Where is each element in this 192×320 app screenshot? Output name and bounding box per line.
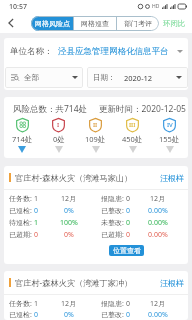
staticText: 已超期:	[9, 230, 32, 240]
staticText: 10:57	[9, 2, 27, 12]
staticText: 泾县应急管理网格化信息平台	[58, 46, 169, 57]
staticText: 2020-12	[124, 73, 176, 83]
staticText: 已整改:	[101, 310, 124, 320]
staticText: 环闭比	[163, 19, 186, 28]
staticText: 已巡检:	[9, 310, 32, 320]
staticText: HD	[152, 3, 160, 10]
staticText: 1	[34, 299, 39, 309]
staticText: 0	[126, 299, 131, 309]
staticText: I	[57, 121, 60, 129]
staticText: 网格风险点	[35, 19, 70, 28]
staticText: 155处	[159, 134, 180, 144]
staticText: 风险总数：共714处	[13, 103, 88, 115]
staticText: 0	[126, 310, 131, 320]
button[interactable]: 网格巡查	[74, 16, 116, 31]
staticText: 100%	[60, 218, 78, 228]
staticText: 450处	[122, 134, 143, 144]
staticText: IV	[167, 121, 173, 129]
staticText: 0.00%	[148, 310, 168, 320]
button[interactable]: IV	[151, 118, 188, 153]
staticText: 日期：	[93, 73, 116, 82]
staticText: 0.00%	[148, 206, 168, 216]
staticText: 0	[126, 230, 131, 240]
staticText: 已巡检:	[9, 206, 32, 216]
staticText: 单位名称：	[10, 46, 53, 57]
staticText: 官庄村-森林火灾（湾滩马家山）	[15, 172, 160, 183]
staticText: 更新时间：2020-12-05	[99, 103, 186, 115]
staticText: 1	[34, 218, 39, 228]
staticText: 待巡检:	[9, 218, 32, 228]
staticText: 0	[126, 218, 131, 228]
staticText: 报隐患:	[101, 299, 124, 309]
staticText: 报隐患:	[101, 194, 124, 204]
staticText: 未整改:	[101, 218, 124, 228]
button[interactable]: III	[114, 118, 151, 153]
button[interactable]: 网格风险点	[31, 16, 73, 31]
staticText: 部门考评	[124, 19, 152, 28]
staticText: 12月	[150, 299, 166, 309]
button[interactable]: II	[77, 118, 114, 153]
button[interactable]: 部门考评	[117, 16, 159, 31]
button[interactable]: I	[40, 118, 77, 153]
button[interactable]: Back	[0, 13, 22, 33]
staticText: 12月	[150, 194, 166, 204]
button[interactable]: 位置查看	[109, 245, 144, 256]
staticText: 0%	[64, 206, 74, 216]
staticText: 0	[126, 194, 131, 204]
staticText: 0%	[64, 310, 74, 320]
staticText: 0	[34, 310, 39, 320]
button[interactable]: 714处	[4, 118, 40, 153]
staticText: 汪根样	[160, 278, 184, 288]
button[interactable]: 日期：	[87, 67, 188, 88]
staticText: 全部	[24, 73, 72, 82]
button[interactable]: 单位名称：	[4, 46, 188, 57]
button[interactable]: 官庄村-森林火灾（湾滩丁家冲）	[4, 271, 188, 320]
staticText: 汪根样	[160, 173, 184, 183]
staticText: 0	[126, 206, 131, 216]
staticText: II	[93, 121, 98, 129]
staticText: 0	[34, 206, 39, 216]
staticText: 任务数:	[9, 299, 32, 309]
staticText: 任务数:	[9, 194, 32, 204]
button[interactable]: 全部	[5, 67, 83, 88]
staticText: 网格巡查	[81, 19, 109, 28]
staticText: 官庄村-森林火灾（湾滩丁家冲）	[15, 277, 160, 288]
staticText: 714处	[12, 134, 33, 144]
staticText: 109处	[85, 134, 106, 144]
staticText: III	[129, 121, 136, 129]
staticText: 已整改:	[101, 206, 124, 216]
staticText: 已超期:	[101, 230, 124, 240]
staticText: 0.00%	[148, 218, 168, 228]
button[interactable]: 官庄村-森林火灾（湾滩马家山）	[4, 166, 188, 264]
staticText: 12月	[61, 194, 77, 204]
staticText: 0	[34, 230, 39, 240]
staticText: 0处	[53, 134, 65, 144]
staticText: 位置查看	[113, 246, 141, 255]
staticText: 0.00%	[148, 230, 168, 240]
staticText: 12月	[61, 299, 77, 309]
staticText: 0%	[64, 230, 74, 240]
staticText: 1	[34, 194, 39, 204]
